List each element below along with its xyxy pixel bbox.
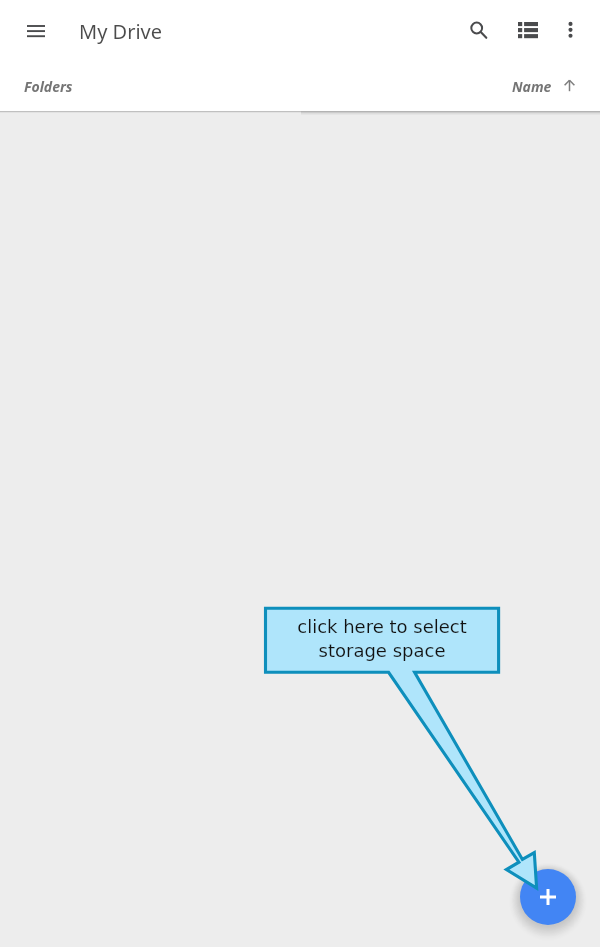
staticText: Name	[512, 77, 552, 96]
button[interactable]: Create new	[520, 869, 576, 925]
staticText: Folders	[24, 77, 73, 96]
button[interactable]: Switch to list view	[504, 0, 552, 62]
button[interactable]: Search	[455, 0, 503, 62]
button[interactable]: Open navigation drawer	[0, 0, 72, 62]
staticText: click here to select storage space	[264, 616, 500, 661]
button[interactable]: Name	[512, 77, 575, 96]
button[interactable]: More options	[546, 0, 594, 62]
staticText: My Drive	[79, 18, 162, 45]
